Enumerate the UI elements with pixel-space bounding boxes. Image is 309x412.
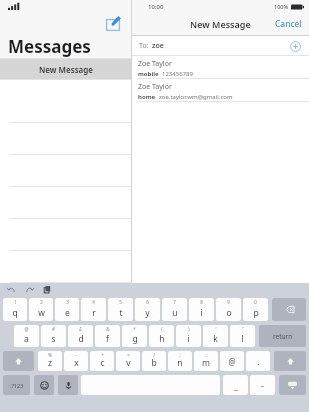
button[interactable]: . [246,351,270,371]
staticText: @ [24,326,29,332]
button[interactable]: % [38,351,62,371]
button[interactable]: Shift [274,351,306,371]
staticText: g [132,333,138,345]
staticText: 5 [119,299,122,305]
staticText: f [106,333,109,345]
button[interactable]: 2 [29,298,53,321]
staticText: & [106,326,110,332]
staticText: 1 [14,299,17,305]
button[interactable]: / [142,351,166,371]
staticText: 7 [173,299,176,305]
staticText: £ [79,326,82,332]
staticText: .?123 [10,382,24,389]
staticText: = [127,352,130,358]
staticText: l [241,333,244,345]
button[interactable]: £ [68,325,93,347]
staticText: z [48,357,52,369]
staticText: zoe [152,41,164,51]
staticText: 3 [66,299,69,305]
button[interactable]: Cancel [275,18,302,30]
button[interactable]: + [90,351,114,371]
staticText: 123456789 [162,70,193,78]
button[interactable]: 9 [216,298,241,321]
button[interactable]: ) [176,325,201,347]
button[interactable]: Backspace [272,298,306,321]
staticText: return [273,332,293,341]
button[interactable]: Compose new message [103,14,123,34]
staticText: To: [139,41,149,51]
staticText: 2 [40,299,43,305]
staticText: % [48,352,52,358]
button[interactable]: ( [149,325,174,347]
staticText: + [101,352,104,358]
button[interactable]: ' [203,325,228,347]
button[interactable]: Paste [42,284,53,295]
staticText: 0 [254,299,257,305]
button[interactable]: Zoe Taylor [132,56,309,78]
button[interactable]: .?123 [3,375,30,395]
staticText: ( [161,326,163,332]
button[interactable]: @ [14,325,39,347]
button[interactable]: @ [220,351,244,371]
staticText: 100% [274,3,289,10]
staticText: y [145,307,150,319]
button[interactable]: Hide keyboard [279,375,306,395]
button[interactable]: Emoji [34,375,54,395]
staticText: r [92,307,96,319]
staticText: e [65,307,70,319]
button[interactable]: Shift [3,351,34,371]
button[interactable]: _ [223,375,248,395]
button[interactable]: Add contact [289,40,301,52]
button[interactable]: " [230,325,255,347]
button[interactable]: = [116,351,140,371]
staticText: Zoe Taylor [138,59,172,69]
button[interactable]: & [95,325,120,347]
staticText: : [205,352,207,358]
staticText: o [226,307,232,319]
button[interactable]: Zoe Taylor [132,79,309,101]
button[interactable]: * [122,325,147,347]
button[interactable]: Undo [6,284,17,295]
staticText: q [12,307,18,319]
button[interactable]: ; [168,351,192,371]
staticText: b [151,357,157,369]
button[interactable]: Redo [24,284,35,295]
staticText: c [100,357,105,369]
staticText: i [200,307,203,319]
button[interactable]: return [259,325,306,347]
button[interactable]: - [250,375,275,395]
staticText: * [133,326,136,332]
staticText: v [126,357,131,369]
button[interactable]: New Message [0,59,131,79]
button[interactable]: # [41,325,66,347]
staticText: home [138,93,156,101]
button[interactable]: 0 [243,298,268,321]
staticText: - [75,352,77,358]
button[interactable]: 1 [3,298,27,321]
button[interactable]: 5 [108,298,133,321]
staticText: p [253,307,259,319]
button[interactable]: 4 [81,298,106,321]
button[interactable]: 8 [189,298,214,321]
button[interactable]: 6 [135,298,160,321]
staticText: 6 [146,299,149,305]
button[interactable]: To: [132,36,309,55]
button[interactable]: 7 [162,298,187,321]
button[interactable]: - [64,351,88,371]
staticText: ) [188,326,190,332]
button[interactable]: : [194,351,218,371]
staticText: . [257,356,260,367]
button[interactable]: 3 [55,298,79,321]
staticText: New Message [190,18,251,30]
button[interactable]: Dictation [58,375,78,395]
staticText: k [213,333,218,345]
staticText: d [78,333,84,345]
staticText: m [202,357,210,369]
